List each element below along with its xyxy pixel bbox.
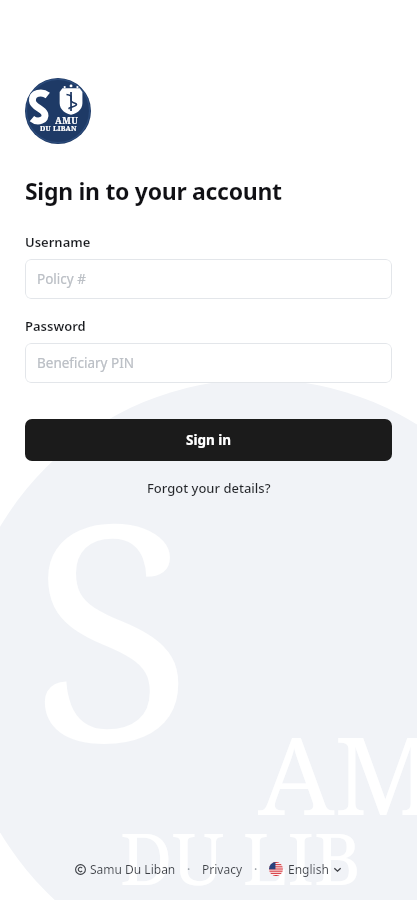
button[interactable]: Beneficiary PIN xyxy=(25,343,392,383)
other: Samu Du Liban logo xyxy=(25,78,91,144)
staticText: AMU xyxy=(55,114,79,126)
staticText: Password xyxy=(25,317,86,335)
staticText: AM xyxy=(258,700,417,847)
staticText: Policy # xyxy=(37,270,86,288)
staticText: Forgot your details? xyxy=(147,479,271,497)
staticText: · xyxy=(187,861,191,877)
staticText: Username xyxy=(25,233,91,251)
button[interactable]: Privacy xyxy=(202,861,243,877)
staticText: Sign in to your account xyxy=(25,175,282,206)
staticText: Samu Du Liban xyxy=(90,861,176,877)
button[interactable]: Forgot your details? xyxy=(25,476,392,500)
staticText: S xyxy=(30,420,194,829)
button[interactable]: Samu Du Liban xyxy=(75,861,176,877)
button[interactable]: Sign in xyxy=(25,419,392,461)
button[interactable]: Policy # xyxy=(25,259,392,299)
button[interactable]: Change language, English xyxy=(269,861,342,877)
staticText: Beneficiary PIN xyxy=(37,354,134,372)
staticText: DU LIBAN xyxy=(40,124,77,134)
staticText: · xyxy=(254,861,258,877)
staticText: DU LIB xyxy=(120,808,362,900)
staticText: English xyxy=(288,861,329,877)
staticText: Privacy xyxy=(202,861,243,877)
staticText: Sign in xyxy=(186,431,232,449)
